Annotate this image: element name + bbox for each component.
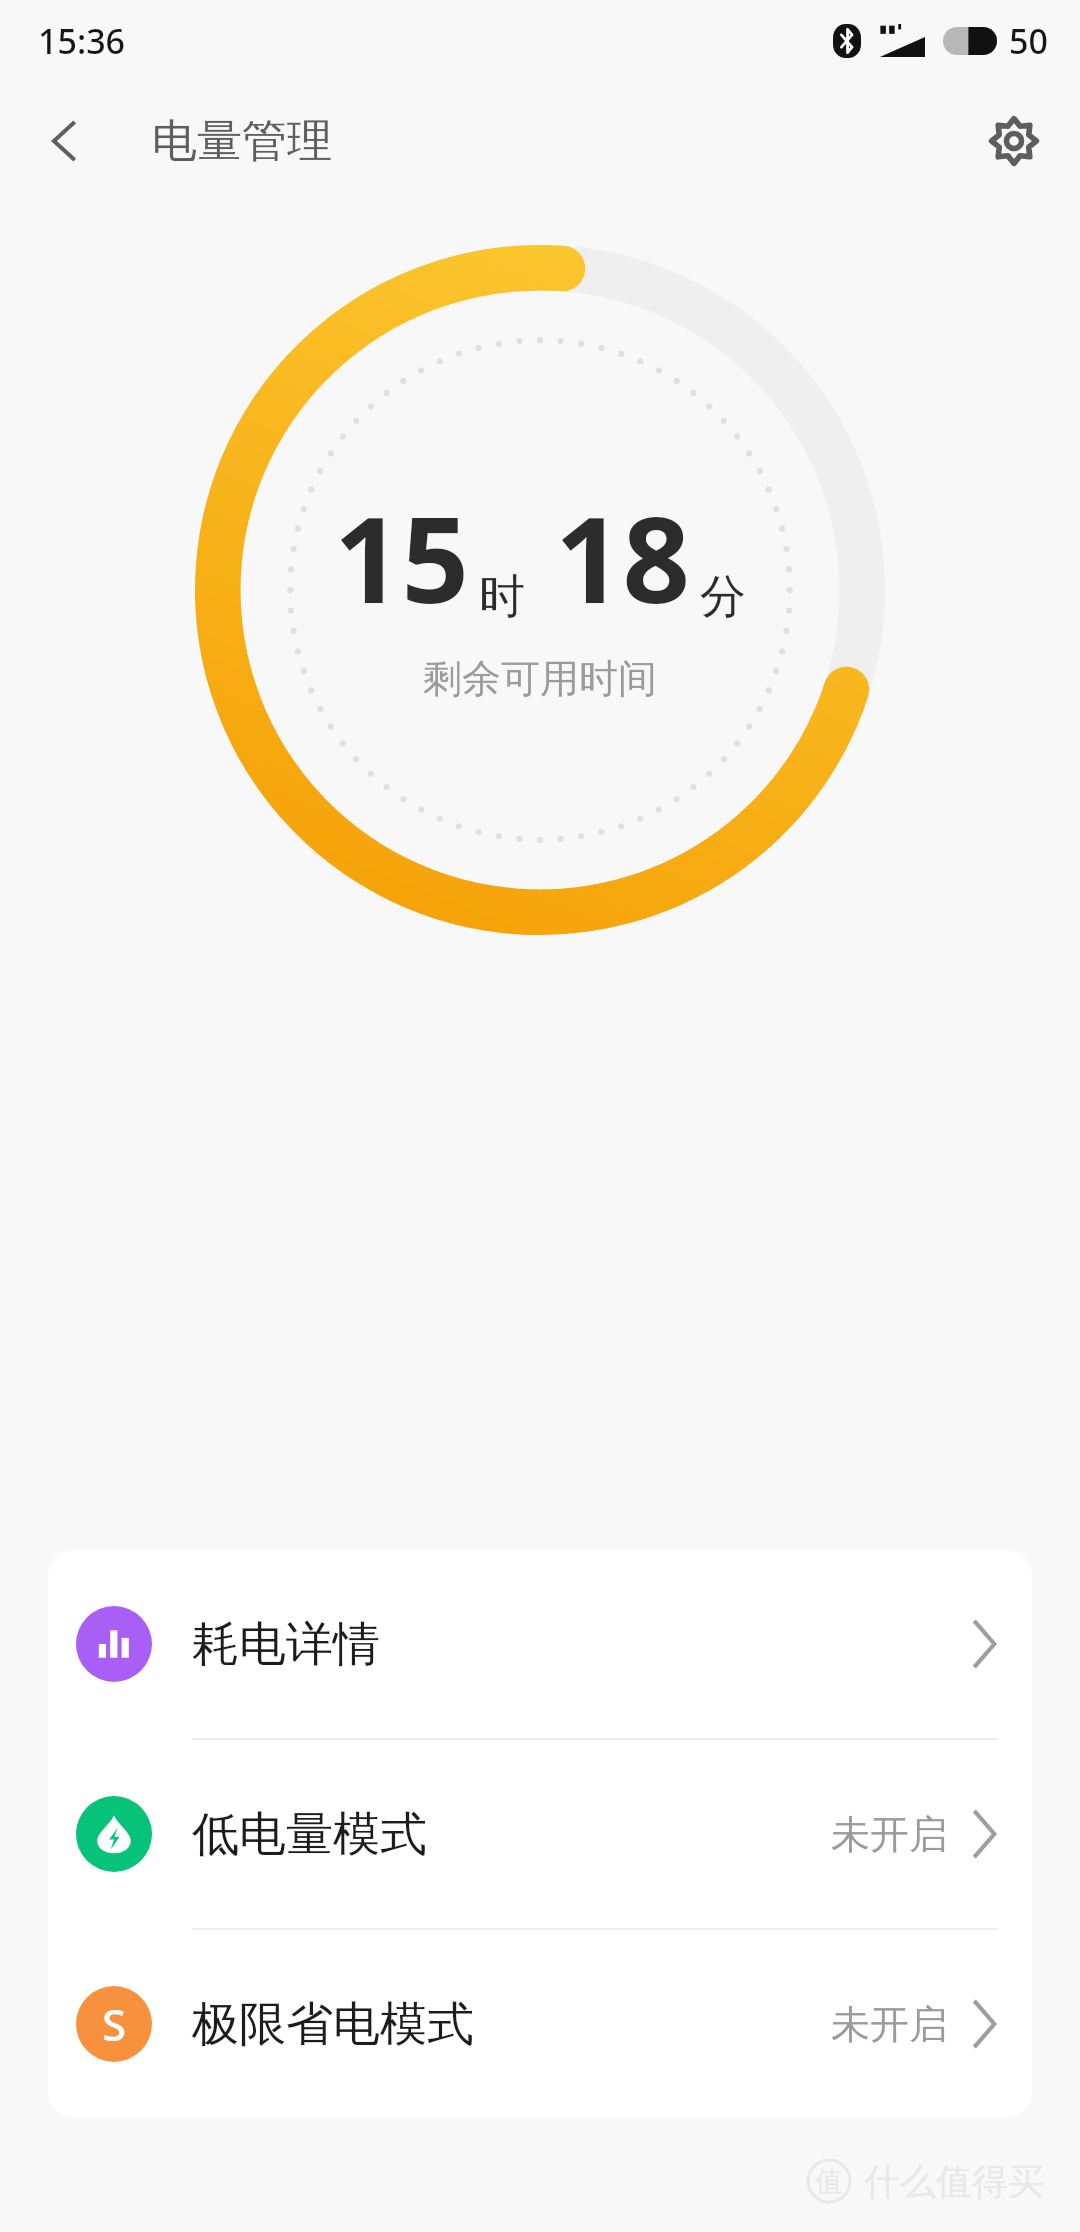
staticText: 未开启 — [831, 2000, 948, 2049]
staticText: 值 — [815, 2164, 843, 2199]
staticText: 分 — [700, 568, 746, 626]
staticText: 15:36 — [38, 18, 126, 64]
button[interactable]: 低电量模式 — [48, 1740, 1032, 1930]
staticText: 18 — [555, 477, 690, 638]
staticText: 15 — [334, 477, 469, 638]
button[interactable]: Back — [18, 95, 110, 187]
staticText: 什么值得买 — [864, 2159, 1044, 2204]
staticText: 未开启 — [831, 1810, 948, 1859]
staticText: 50 — [1009, 18, 1048, 64]
button[interactable]: S — [48, 1930, 1032, 2118]
staticText: 电量管理 — [152, 113, 332, 170]
staticText: 时 — [479, 568, 525, 626]
staticText: S — [102, 1994, 127, 2054]
button[interactable]: Settings — [968, 95, 1060, 187]
button[interactable]: 耗电详情 — [48, 1550, 1032, 1740]
staticText: 低电量模式 — [192, 1805, 427, 1864]
staticText: 极限省电模式 — [192, 1995, 474, 2054]
staticText: 剩余可用时间 — [423, 654, 657, 703]
staticText: 耗电详情 — [192, 1615, 380, 1674]
